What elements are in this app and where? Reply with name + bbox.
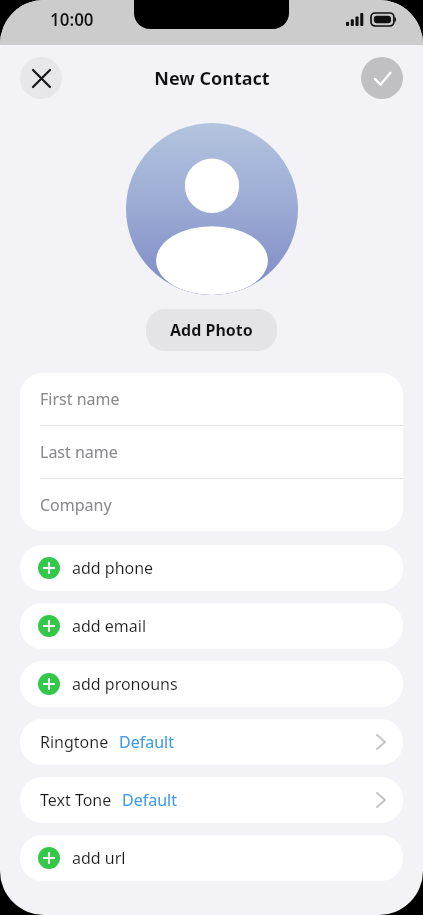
button[interactable]: add email bbox=[20, 603, 403, 649]
button[interactable]: Cancel bbox=[20, 57, 62, 99]
button[interactable]: add pronouns bbox=[20, 661, 403, 707]
button[interactable]: Last name bbox=[20, 426, 403, 479]
button[interactable]: First name bbox=[20, 373, 403, 426]
staticText: 10:00 bbox=[50, 8, 94, 31]
staticText: First name bbox=[40, 388, 120, 410]
staticText: New Contact bbox=[154, 66, 270, 91]
staticText: add url bbox=[72, 847, 126, 869]
button[interactable]: Ringtone bbox=[20, 719, 403, 765]
button[interactable]: Contact photo bbox=[126, 123, 298, 295]
staticText: add phone bbox=[72, 557, 154, 579]
button[interactable]: Text Tone bbox=[20, 777, 403, 823]
staticText: Add Photo bbox=[170, 319, 253, 341]
staticText: Last name bbox=[40, 441, 118, 463]
staticText: Text Tone bbox=[40, 789, 112, 811]
staticText: add pronouns bbox=[72, 673, 178, 695]
staticText: Default bbox=[122, 789, 177, 811]
staticText: Ringtone bbox=[40, 731, 109, 753]
button[interactable]: add phone bbox=[20, 545, 403, 591]
button[interactable]: Done bbox=[361, 57, 403, 99]
staticText: Default bbox=[119, 731, 174, 753]
button[interactable]: Add Photo bbox=[146, 309, 277, 351]
staticText: Company bbox=[40, 494, 112, 516]
button[interactable]: Company bbox=[20, 479, 403, 531]
button[interactable]: add url bbox=[20, 835, 403, 881]
staticText: add email bbox=[72, 615, 147, 637]
